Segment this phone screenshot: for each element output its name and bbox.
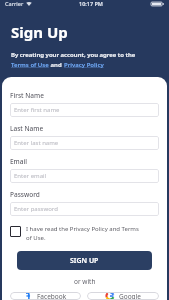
staticText: Email [10, 157, 28, 166]
staticText: Enter last name [14, 139, 59, 147]
button[interactable]: Enter email [10, 169, 159, 183]
button[interactable]: Enter last name [10, 136, 159, 150]
staticText: and [49, 61, 64, 69]
staticText: of Use. [26, 234, 46, 242]
staticText: Last Name [10, 124, 44, 133]
staticText: First Name [10, 91, 44, 100]
staticText: Facebook [37, 292, 67, 300]
button[interactable]: Google [87, 292, 159, 300]
staticText: Password [10, 190, 40, 199]
button[interactable]: Enter password [10, 202, 159, 216]
staticText: 10:17 PM [79, 0, 103, 7]
staticText: I have read the Privacy Policy and Terms [26, 225, 139, 233]
button[interactable]: Enter first name [10, 103, 159, 117]
button[interactable]: Facebook [10, 292, 81, 300]
staticText: Sign Up [11, 22, 68, 42]
staticText: or with [74, 277, 96, 286]
staticText: Carrier [5, 0, 24, 7]
button[interactable]: SIGN UP [17, 251, 152, 270]
button[interactable]: Privacy Policy [64, 61, 104, 69]
staticText: Terms of Use [11, 61, 49, 69]
staticText: Google [119, 292, 141, 300]
button[interactable]: Terms of Use [11, 61, 49, 69]
staticText: Enter password [14, 205, 58, 213]
staticText: Privacy Policy [64, 61, 104, 69]
staticText: Enter first name [14, 106, 60, 114]
staticText: SIGN UP [70, 256, 99, 266]
staticText: Enter email [14, 172, 47, 180]
staticText: By creating your account, you agree to t… [11, 51, 136, 59]
button[interactable]: I have read the Privacy Policy and Terms [10, 225, 159, 242]
